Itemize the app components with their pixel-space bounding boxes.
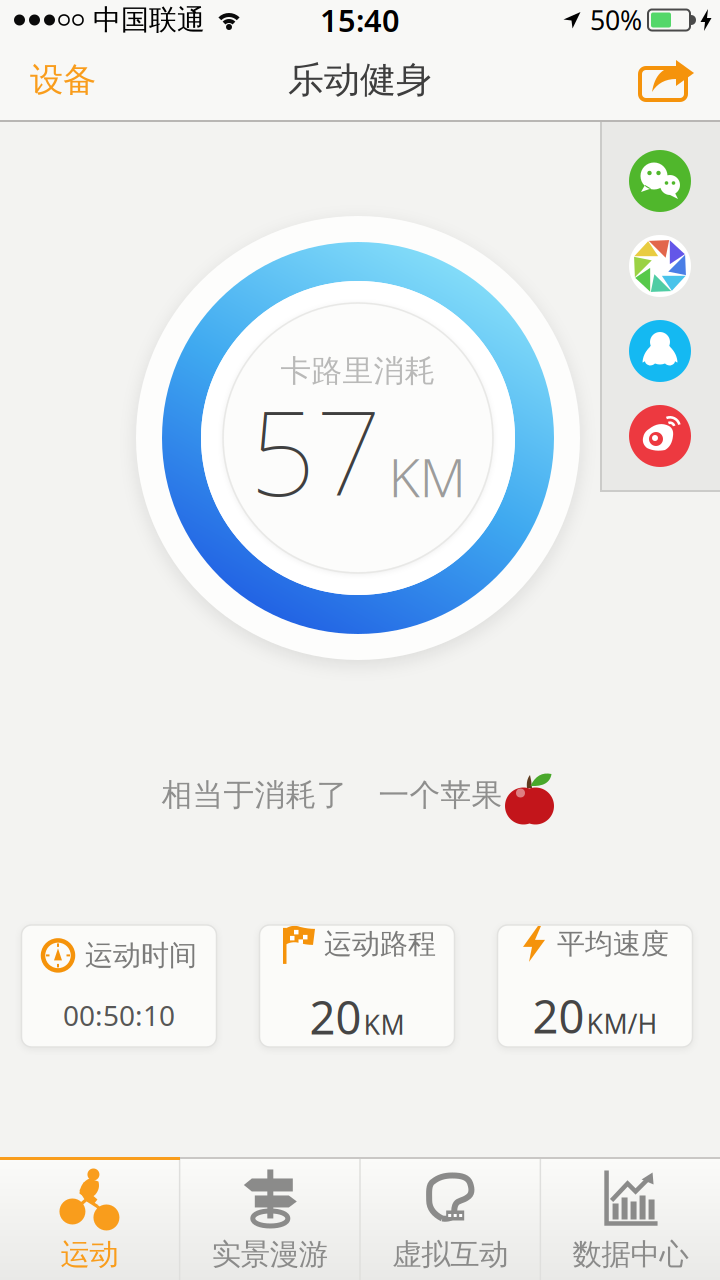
staticText: 运动时间 xyxy=(85,938,197,973)
staticText: 57 xyxy=(249,374,381,528)
staticText: 乐动健身 xyxy=(288,58,432,102)
staticText: 平均速度 xyxy=(557,927,669,961)
staticText: 设备 xyxy=(30,59,96,100)
button[interactable]: 设备 xyxy=(0,45,96,114)
staticText: 运动 xyxy=(60,1236,118,1272)
button[interactable]: 微信 xyxy=(629,150,691,212)
staticText: 虚拟互动 xyxy=(392,1236,508,1272)
staticText: 中国联通 xyxy=(93,3,205,37)
staticText: 50% xyxy=(590,2,642,38)
button[interactable]: 实景漫游 xyxy=(180,1159,359,1280)
button[interactable]: 微博 xyxy=(629,405,691,467)
staticText: 卡路里消耗 xyxy=(280,352,435,390)
staticText: KM xyxy=(363,1007,404,1042)
button[interactable]: 运动 xyxy=(0,1159,179,1280)
staticText: KM/H xyxy=(586,1006,657,1041)
staticText: 00:50:10 xyxy=(63,997,175,1034)
button[interactable]: 数据中心 xyxy=(541,1159,720,1280)
button[interactable]: QQ xyxy=(629,320,691,382)
button[interactable]: 朋友圈 xyxy=(629,235,691,297)
button[interactable]: 虚拟互动 xyxy=(361,1159,540,1280)
staticText: KM xyxy=(388,441,466,512)
staticText: 相当于消耗了 一个苹果 xyxy=(161,776,502,814)
staticText: 15:40 xyxy=(320,0,400,40)
staticText: 20 xyxy=(532,986,584,1046)
staticText: 实景漫游 xyxy=(212,1236,328,1272)
button[interactable]: 分享 xyxy=(640,50,720,110)
staticText: 运动路程 xyxy=(324,927,436,961)
staticText: 20 xyxy=(309,987,361,1047)
staticText: 数据中心 xyxy=(573,1236,689,1272)
